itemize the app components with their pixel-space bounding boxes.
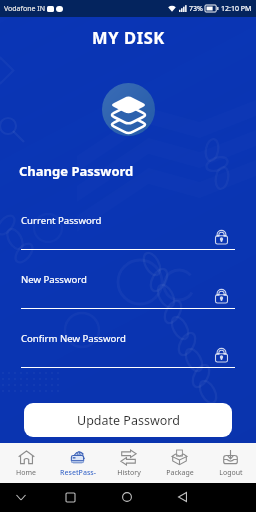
button[interactable]: ResetPass- — [52, 443, 103, 483]
button[interactable]: Update Password — [24, 403, 232, 437]
button[interactable]: Home — [0, 443, 52, 483]
staticText: MY DISK — [92, 26, 165, 48]
button[interactable]: Home — [116, 486, 138, 508]
staticText: Home — [16, 468, 36, 478]
staticText: 12:10 PM — [221, 4, 252, 14]
staticText: Change Password — [19, 162, 134, 180]
staticText: Update Password — [77, 412, 180, 429]
button[interactable]: Logout — [205, 443, 256, 483]
button[interactable]: Hide keyboard — [10, 486, 32, 508]
staticText: Package — [166, 468, 194, 478]
staticText: New Password — [21, 273, 87, 286]
staticText: 73% — [189, 4, 203, 14]
button[interactable]: History — [103, 443, 154, 483]
staticText: Current Password — [21, 214, 102, 227]
button[interactable]: Package — [154, 443, 205, 483]
staticText: Logout — [219, 468, 243, 478]
staticText: Vodafone IN — [4, 4, 45, 14]
button[interactable]: Back — [171, 486, 193, 508]
staticText: ResetPass- — [60, 468, 96, 478]
staticText: Confirm New Password — [21, 332, 126, 345]
button[interactable]: Recent apps — [59, 486, 81, 508]
staticText: History — [117, 468, 141, 478]
